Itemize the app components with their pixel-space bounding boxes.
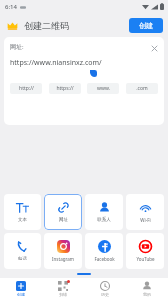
- staticText: https://www.niansinxz.com/: [10, 58, 102, 68]
- button[interactable]: 扫描: [42, 278, 84, 300]
- button[interactable]: 历史: [84, 278, 126, 300]
- button[interactable]: YouTube: [126, 233, 164, 269]
- staticText: https://: [56, 85, 74, 92]
- staticText: 创建二维码: [24, 20, 69, 31]
- button[interactable]: http://: [10, 83, 42, 94]
- button[interactable]: 创建: [129, 18, 163, 33]
- button[interactable]: 我的: [126, 278, 168, 300]
- staticText: 文本: [18, 217, 27, 223]
- button[interactable]: Clear: [149, 43, 159, 53]
- staticText: 6:14: [5, 3, 17, 11]
- button[interactable]: 创建: [0, 278, 42, 300]
- button[interactable]: www.: [87, 83, 119, 94]
- staticText: YouTube: [136, 256, 155, 262]
- button[interactable]: .com: [126, 83, 158, 94]
- staticText: .com: [136, 85, 148, 92]
- button[interactable]: Instagram: [44, 233, 82, 269]
- staticText: 联系人: [97, 217, 111, 223]
- staticText: Instagram: [52, 256, 74, 262]
- button[interactable]: 网址: [44, 194, 82, 230]
- button[interactable]: Wi-Fi: [126, 194, 164, 230]
- staticText: Wi-Fi: [140, 217, 151, 223]
- button[interactable]: Facebook: [85, 233, 123, 269]
- staticText: 创建: [17, 292, 25, 297]
- staticText: 历史: [101, 292, 109, 297]
- staticText: 网址: [59, 217, 68, 223]
- staticText: Facebook: [94, 256, 115, 262]
- button[interactable]: 文本: [4, 194, 41, 230]
- button[interactable]: https://: [49, 83, 81, 94]
- button[interactable]: 电话: [4, 233, 41, 269]
- staticText: www.: [97, 85, 110, 92]
- staticText: http://: [19, 85, 34, 92]
- button[interactable]: 联系人: [85, 194, 123, 230]
- staticText: 扫描: [59, 292, 67, 297]
- staticText: 电话: [18, 256, 27, 262]
- staticText: 创建: [139, 21, 153, 30]
- staticText: 网址:: [10, 43, 24, 51]
- staticText: 我的: [143, 292, 151, 297]
